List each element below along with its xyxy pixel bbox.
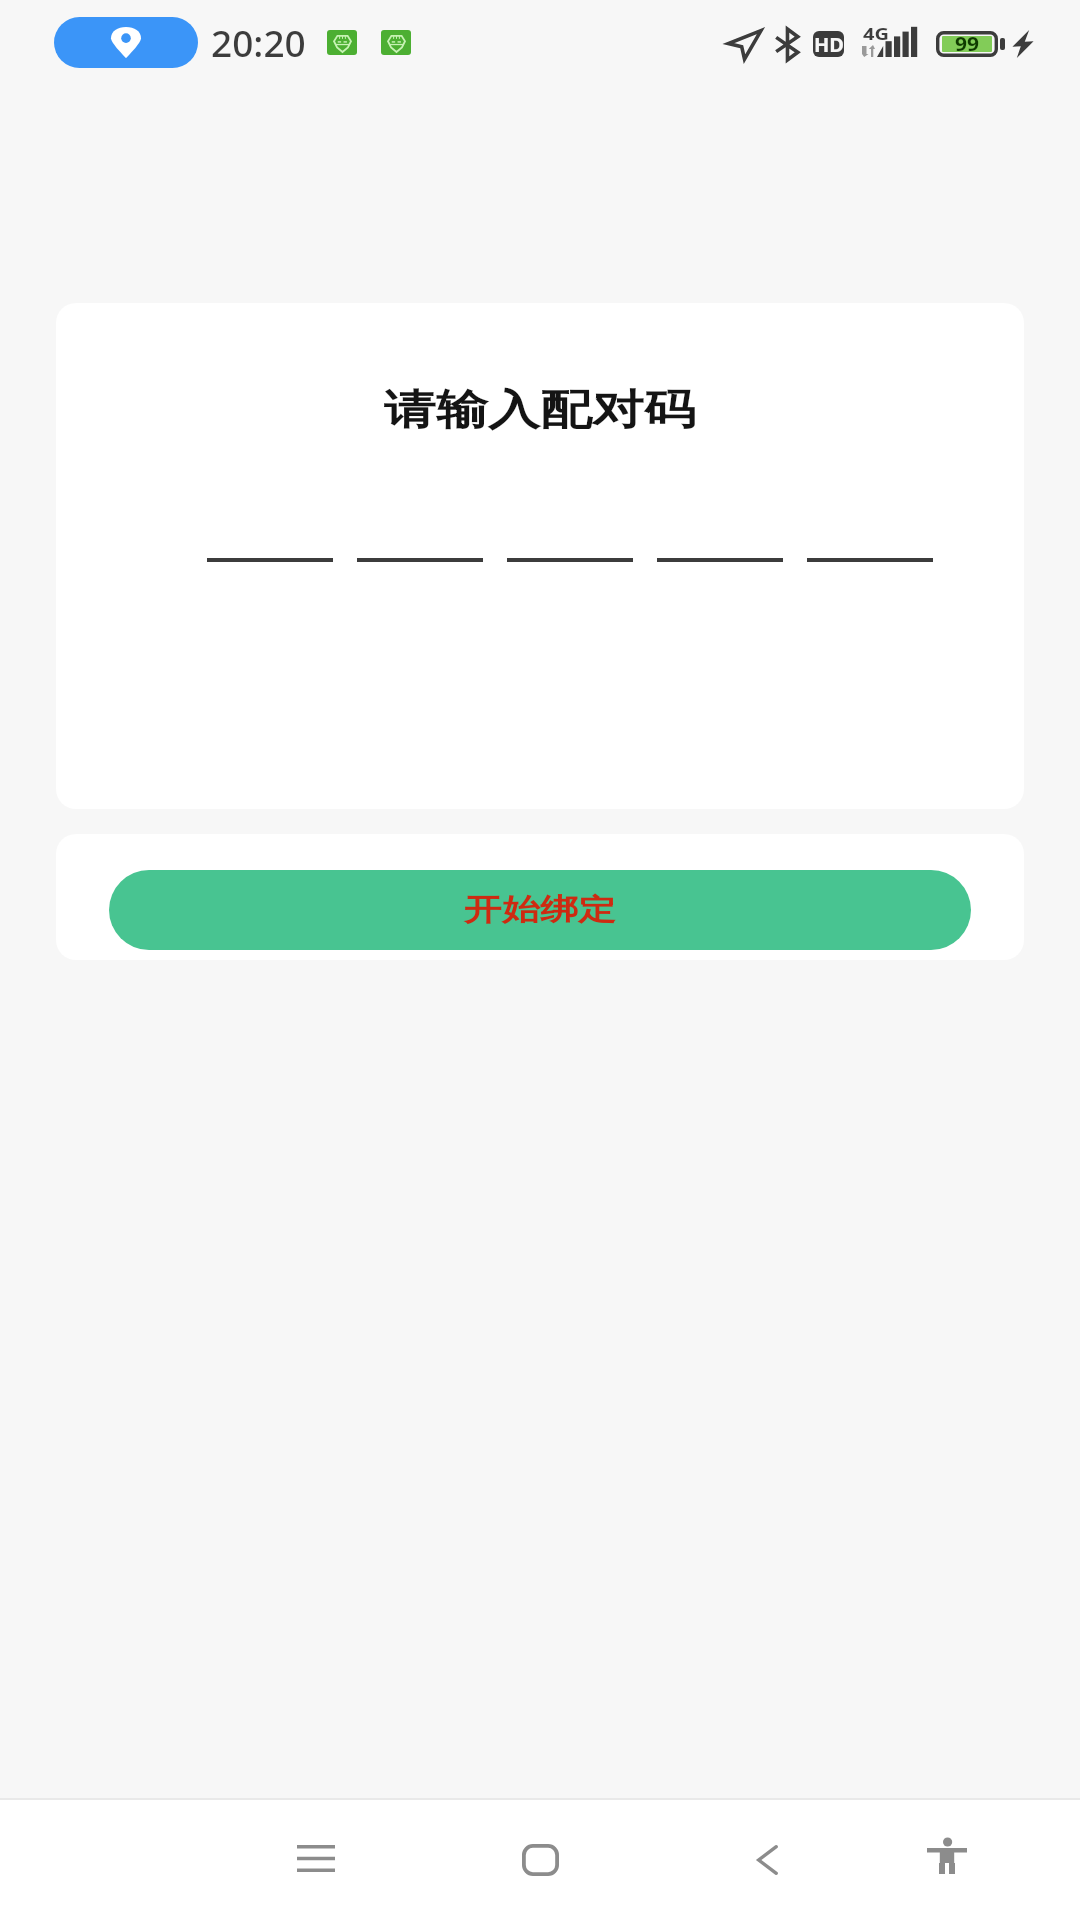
staticText: 开始绑定 xyxy=(464,891,616,929)
button[interactable]: Pairing code input xyxy=(207,498,934,562)
staticText: 99 xyxy=(955,31,980,55)
button[interactable]: Home xyxy=(492,1812,588,1908)
staticText: 20:20 xyxy=(211,17,306,59)
button[interactable]: 开始绑定 xyxy=(109,870,971,950)
staticText: HD xyxy=(814,31,844,57)
button[interactable]: Accessibility xyxy=(899,1808,995,1904)
button[interactable]: Back xyxy=(719,1812,815,1908)
staticText: 请输入配对码 xyxy=(56,384,1024,436)
button[interactable]: Menu xyxy=(268,1810,364,1906)
staticText: 4G xyxy=(863,23,889,45)
